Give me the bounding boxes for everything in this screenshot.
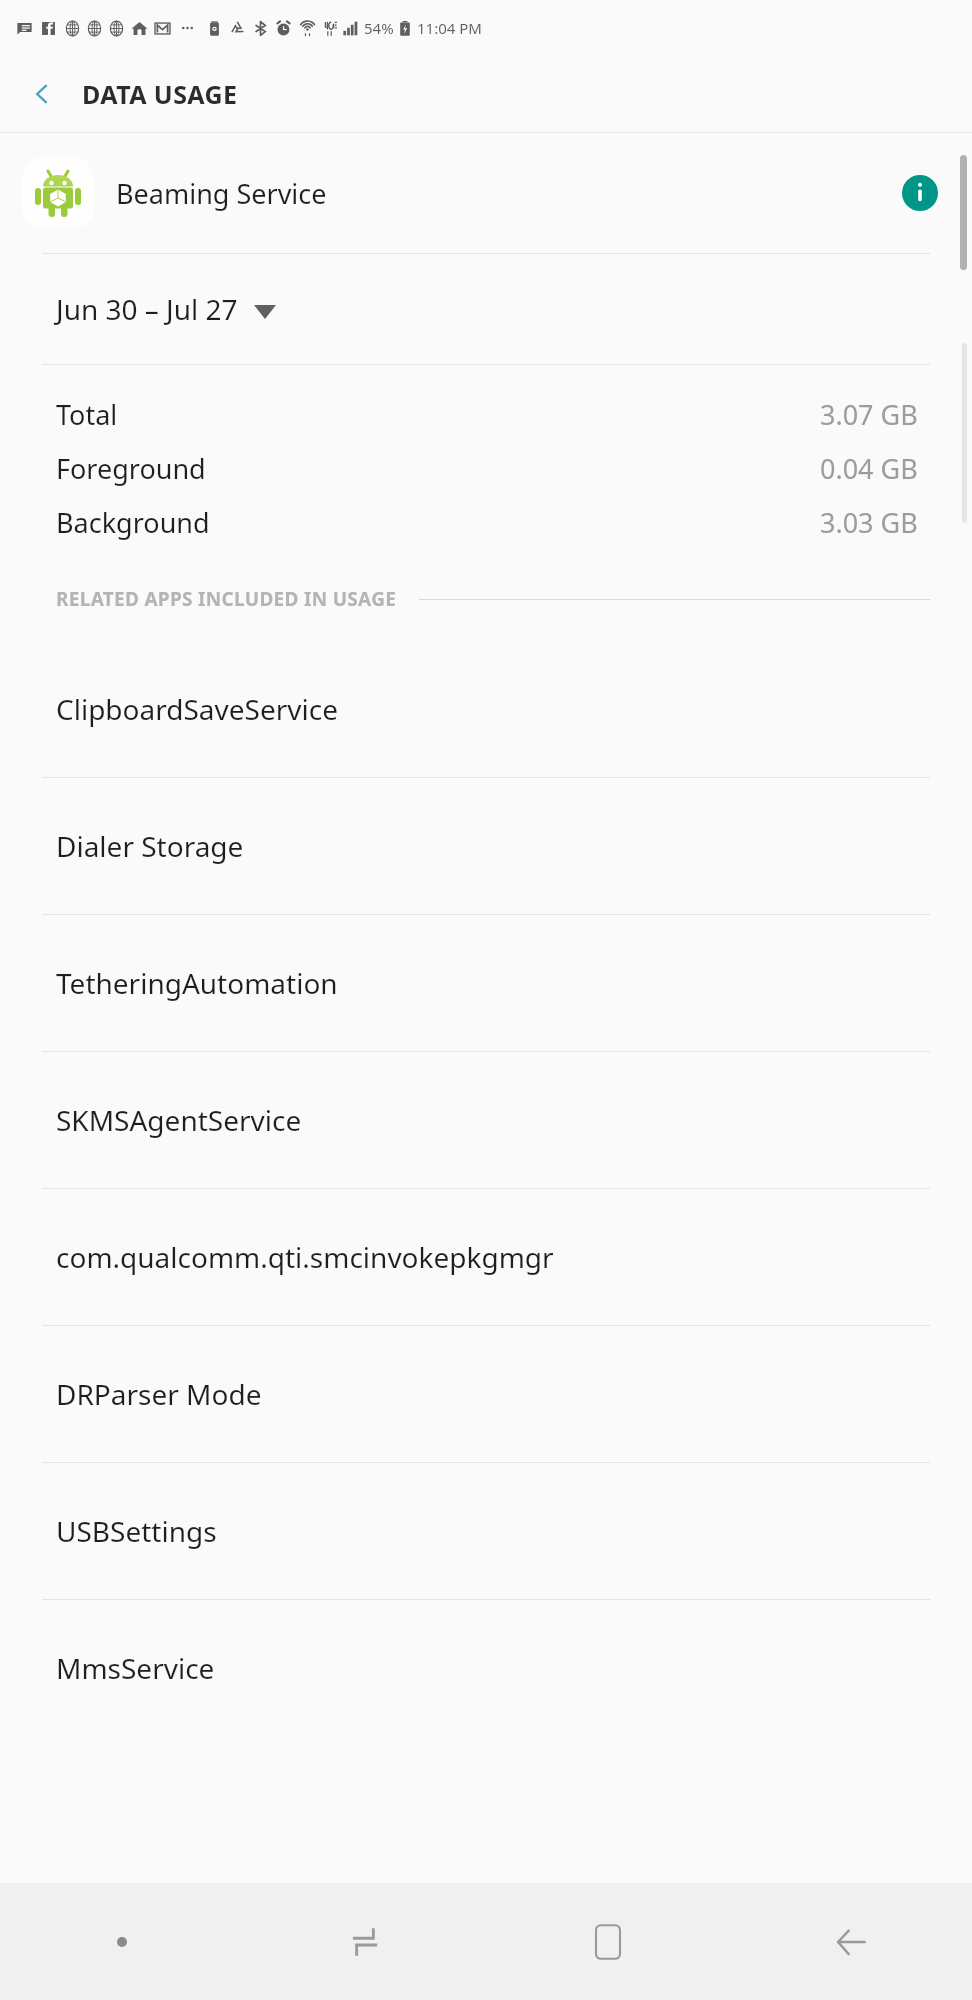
staticText: RELATED APPS INCLUDED IN USAGE — [56, 586, 397, 612]
button[interactable]: Beaming Service — [0, 133, 972, 253]
button[interactable]: ClipboardSaveService — [0, 641, 972, 777]
button[interactable]: DRParser Mode — [0, 1326, 972, 1462]
button[interactable]: Home — [486, 1883, 729, 2000]
staticText: SKMSAgentService — [56, 1101, 302, 1139]
button[interactable] — [0, 1883, 243, 2000]
button[interactable]: Back — [20, 72, 64, 116]
button[interactable]: Dialer Storage — [0, 778, 972, 914]
staticText: ClipboardSaveService — [56, 690, 338, 728]
staticText: 54% — [364, 18, 394, 38]
staticText: Dialer Storage — [56, 827, 244, 865]
staticText: com.qualcomm.qti.smcinvokepkgmgr — [56, 1238, 554, 1276]
staticText: MmsService — [56, 1649, 215, 1687]
button[interactable]: Background — [0, 495, 972, 549]
staticText: 3.03 GB — [820, 504, 918, 541]
staticText: 11:04 PM — [417, 18, 482, 38]
staticText: 0.04 GB — [820, 450, 918, 487]
staticText: Jun 30 – Jul 27 — [56, 290, 238, 328]
button[interactable]: Jun 30 – Jul 27 — [0, 254, 972, 364]
staticText: 3.07 GB — [820, 396, 918, 433]
staticText: Background — [56, 504, 210, 541]
button[interactable]: USBSettings — [0, 1463, 972, 1599]
button[interactable]: Total — [0, 387, 972, 441]
staticText: Beaming Service — [116, 175, 327, 212]
button[interactable]: Back — [729, 1883, 972, 2000]
button[interactable]: SKMSAgentService — [0, 1052, 972, 1188]
staticText: Total — [56, 396, 118, 433]
button[interactable]: com.qualcomm.qti.smcinvokepkgmgr — [0, 1189, 972, 1325]
staticText: DATA USAGE — [82, 77, 238, 111]
staticText: DRParser Mode — [56, 1375, 262, 1413]
staticText: TetheringAutomation — [56, 964, 338, 1002]
button[interactable]: Foreground — [0, 441, 972, 495]
button[interactable]: TetheringAutomation — [0, 915, 972, 1051]
button[interactable]: App info — [890, 163, 950, 223]
staticText: USBSettings — [56, 1512, 217, 1550]
button[interactable]: Recents — [243, 1883, 486, 2000]
staticText: Foreground — [56, 450, 206, 487]
button[interactable]: MmsService — [0, 1600, 972, 1736]
